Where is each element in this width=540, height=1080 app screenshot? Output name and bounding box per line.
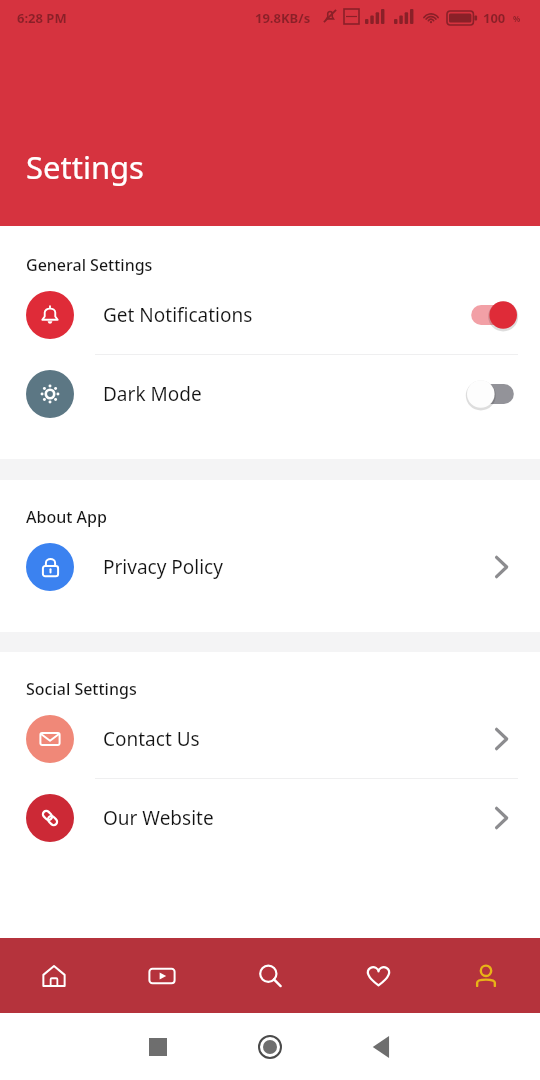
button[interactable]: Open bbox=[484, 722, 518, 756]
button[interactable]: Open bbox=[484, 550, 518, 584]
button[interactable]: Toggle on bbox=[466, 300, 518, 330]
staticText: General Settings bbox=[26, 254, 153, 276]
staticText: Settings bbox=[26, 146, 144, 188]
button[interactable]: Home bbox=[0, 938, 108, 1013]
staticText: Get Notifications bbox=[103, 302, 466, 328]
staticText: 6:28 PM bbox=[17, 9, 67, 27]
button[interactable]: Get Notifications bbox=[0, 276, 540, 354]
staticText: Social Settings bbox=[26, 678, 137, 700]
staticText: 100 bbox=[483, 9, 506, 27]
button[interactable]: Our Website bbox=[0, 779, 540, 857]
staticText: Dark Mode bbox=[103, 381, 466, 407]
staticText: About App bbox=[26, 506, 107, 528]
button[interactable]: Dark Mode bbox=[0, 355, 540, 433]
button[interactable]: Videos bbox=[108, 938, 216, 1013]
staticText: Privacy Policy bbox=[103, 554, 484, 580]
staticText: Our Website bbox=[103, 805, 484, 831]
button[interactable]: Search bbox=[216, 938, 324, 1013]
button[interactable]: Favourites bbox=[324, 938, 432, 1013]
button[interactable]: Contact Us bbox=[0, 700, 540, 778]
button[interactable]: Toggle off bbox=[466, 379, 518, 409]
button[interactable]: Privacy Policy bbox=[0, 528, 540, 606]
staticText: 19.8KB/s bbox=[255, 9, 311, 27]
staticText: Contact Us bbox=[103, 726, 484, 752]
staticText: % bbox=[513, 13, 521, 24]
button[interactable]: Profile bbox=[432, 938, 540, 1013]
button[interactable]: Open bbox=[484, 801, 518, 835]
